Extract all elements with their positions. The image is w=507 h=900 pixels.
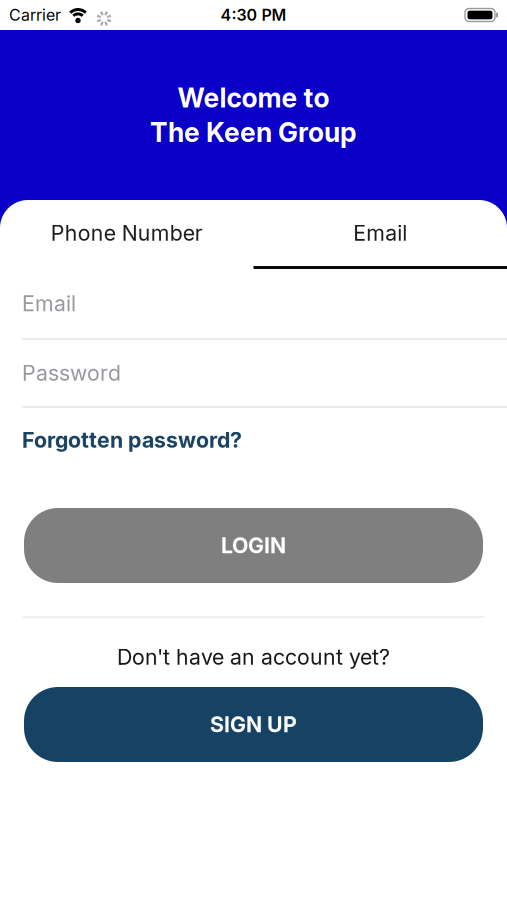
staticText: Don't have an account yet? [117, 644, 390, 670]
staticText: Forgotten password? [22, 427, 242, 453]
staticText: 4:30 PM [220, 6, 286, 24]
button[interactable]: Password [0, 340, 507, 408]
staticText: Password [22, 360, 121, 386]
staticText: The Keen Group [150, 116, 357, 148]
button[interactable]: Forgotten password? [22, 427, 242, 453]
button[interactable]: SIGN UP [24, 687, 483, 762]
button[interactable]: Phone Number [0, 200, 253, 266]
staticText: Email [353, 220, 407, 246]
button[interactable]: Email [0, 269, 507, 340]
staticText: Email [22, 291, 76, 316]
staticText: Carrier [9, 6, 61, 24]
staticText: SIGN UP [210, 712, 297, 737]
button[interactable]: Email [253, 200, 507, 266]
staticText: LOGIN [221, 533, 286, 558]
button[interactable]: LOGIN [24, 508, 483, 583]
staticText: Welcome to [177, 82, 329, 113]
staticText: Phone Number [51, 220, 203, 246]
